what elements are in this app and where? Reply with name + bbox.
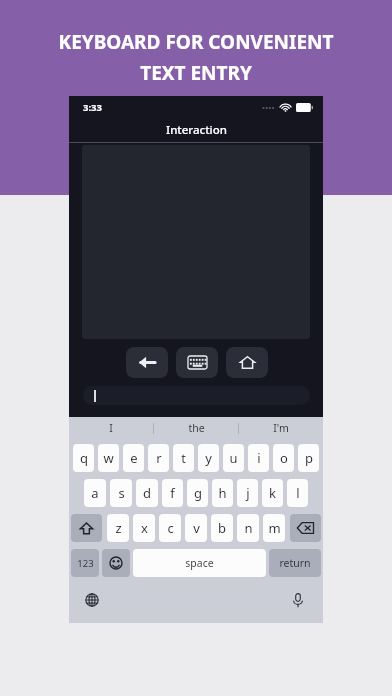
staticText: d: [143, 484, 151, 502]
button[interactable]: o: [273, 444, 294, 472]
staticText: TEXT ENTRY: [10, 60, 382, 86]
button[interactable]: space: [133, 549, 266, 577]
button[interactable]: h: [212, 479, 233, 507]
staticText: KEYBOARD FOR CONVENIENT: [10, 29, 382, 55]
staticText: v: [193, 519, 200, 537]
button[interactable]: Backspace: [290, 514, 321, 542]
staticText: z: [115, 519, 122, 537]
button[interactable]: Back: [126, 347, 168, 378]
staticText: b: [218, 519, 226, 537]
staticText: c: [167, 519, 174, 537]
staticText: m: [268, 519, 281, 537]
staticText: n: [244, 519, 253, 537]
staticText: l: [296, 484, 300, 502]
staticText: k: [269, 484, 276, 502]
button[interactable]: y: [198, 444, 219, 472]
button[interactable]: Dictation: [285, 587, 311, 613]
button[interactable]: z: [107, 514, 129, 542]
button[interactable]: u: [223, 444, 244, 472]
button[interactable]: s: [110, 479, 132, 507]
button[interactable]: 123: [71, 549, 99, 577]
button[interactable]: v: [185, 514, 207, 542]
staticText: t: [181, 449, 186, 467]
staticText: g: [194, 484, 202, 502]
staticText: i: [257, 449, 261, 467]
button[interactable]: Change keyboard: [79, 587, 105, 613]
staticText: the: [188, 421, 205, 435]
staticText: return: [279, 556, 311, 570]
staticText: a: [91, 484, 99, 502]
button[interactable]: e: [123, 444, 144, 472]
button[interactable]: g: [187, 479, 208, 507]
staticText: 123: [77, 557, 94, 570]
staticText: Interaction: [166, 122, 227, 138]
staticText: j: [246, 484, 250, 502]
staticText: 3:33: [83, 101, 102, 114]
staticText: w: [103, 449, 114, 467]
button[interactable]: m: [263, 514, 285, 542]
staticText: y: [205, 449, 212, 467]
button[interactable]: f: [162, 479, 183, 507]
staticText: h: [218, 484, 227, 502]
button[interactable]: n: [237, 514, 259, 542]
button[interactable]: t: [173, 444, 194, 472]
staticText: p: [305, 449, 313, 467]
staticText: x: [141, 519, 148, 537]
staticText: f: [170, 484, 175, 502]
button[interactable]: return: [269, 549, 321, 577]
button[interactable]: Home: [226, 347, 268, 378]
button[interactable]: b: [211, 514, 233, 542]
button[interactable]: x: [133, 514, 155, 542]
staticText: e: [130, 449, 138, 467]
button[interactable]: I'm: [239, 417, 323, 439]
staticText: I: [109, 421, 113, 435]
button[interactable]: k: [262, 479, 283, 507]
button[interactable]: I: [69, 417, 153, 439]
button[interactable]: i: [248, 444, 269, 472]
button[interactable]: j: [237, 479, 258, 507]
button[interactable]: the: [154, 417, 238, 439]
button[interactable]: Shift: [71, 514, 102, 542]
button[interactable]: q: [73, 444, 94, 472]
button[interactable]: [83, 386, 310, 405]
button[interactable]: r: [148, 444, 169, 472]
staticText: space: [185, 556, 214, 570]
button[interactable]: Emoji: [102, 549, 130, 577]
button[interactable]: a: [84, 479, 106, 507]
button[interactable]: Keyboard: [176, 347, 218, 378]
button[interactable]: w: [98, 444, 119, 472]
staticText: q: [80, 449, 88, 467]
staticText: s: [118, 484, 125, 502]
staticText: r: [156, 449, 162, 467]
button[interactable]: p: [298, 444, 319, 472]
button[interactable]: c: [159, 514, 181, 542]
staticText: I'm: [273, 421, 289, 435]
staticText: o: [280, 449, 288, 467]
button[interactable]: d: [136, 479, 158, 507]
button[interactable]: l: [287, 479, 308, 507]
staticText: u: [229, 449, 238, 467]
